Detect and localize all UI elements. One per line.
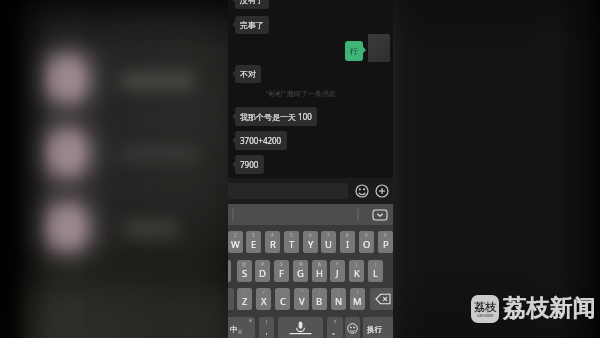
staticText: ;: [338, 289, 340, 295]
staticText: 9: [365, 232, 368, 238]
staticText: ?: [334, 319, 337, 326]
button[interactable]: 5: [284, 231, 299, 253]
button[interactable]: Backspace: [370, 288, 393, 310]
staticText: @: [242, 261, 247, 267]
button[interactable]: Comma: [259, 317, 274, 338]
staticText: ，: [263, 327, 270, 336]
staticText: LIZHI NEWS: [477, 314, 494, 318]
staticText: #: [261, 261, 264, 267]
button[interactable]: Hide keyboard: [373, 210, 387, 220]
staticText: 8: [346, 232, 349, 238]
staticText: %: [299, 261, 303, 267]
button[interactable]: &: [312, 260, 327, 282]
staticText: N: [335, 295, 343, 308]
staticText: K: [354, 267, 360, 280]
button[interactable]: #: [255, 260, 270, 282]
staticText: P: [383, 238, 389, 251]
staticText: 英: [238, 329, 243, 334]
staticText: O: [363, 238, 371, 251]
staticText: 中: [230, 325, 238, 334]
button[interactable]: 9: [359, 231, 374, 253]
staticText: “彬彬” 撤回了一条消息: [266, 89, 336, 99]
button[interactable]: 7: [321, 231, 336, 253]
staticText: L: [373, 267, 378, 280]
button[interactable]: 6: [303, 231, 318, 253]
button[interactable]: 2: [228, 231, 243, 253]
staticText: *: [336, 261, 339, 267]
staticText: J: [336, 267, 339, 280]
staticText: D: [259, 267, 266, 280]
staticText: -: [282, 289, 284, 295]
staticText: 不对: [240, 69, 256, 79]
staticText: 7: [327, 232, 330, 238]
button[interactable]: 完事了: [235, 16, 269, 34]
staticText: ): [375, 261, 377, 267]
staticText: /: [263, 289, 265, 295]
staticText: R: [270, 238, 276, 251]
button[interactable]: *: [330, 260, 345, 282]
staticText: $: [280, 261, 283, 267]
button[interactable]: 荔枝: [471, 294, 595, 323]
staticText: 0: [384, 232, 387, 238]
staticText: H: [316, 267, 323, 280]
staticText: !: [357, 289, 359, 295]
staticText: C: [280, 295, 286, 308]
button[interactable]: ): [368, 260, 383, 282]
button[interactable]: 0: [378, 231, 393, 253]
staticText: E: [251, 238, 257, 251]
staticText: 2: [234, 232, 237, 238]
button[interactable]: [228, 260, 231, 282]
staticText: 我那个号是一天 100: [240, 111, 312, 122]
staticText: Y: [308, 238, 314, 251]
staticText: :: [319, 289, 321, 295]
button[interactable]: 3700+4200: [235, 131, 287, 150]
button[interactable]: Avatar: [368, 34, 390, 62]
button[interactable]: @: [237, 260, 252, 282]
staticText: 荔枝新闻: [503, 294, 595, 323]
staticText: ": [301, 289, 303, 295]
button[interactable]: $: [274, 260, 289, 282]
button[interactable]: (: [349, 260, 364, 282]
button[interactable]: Period: [327, 317, 343, 338]
button[interactable]: 换行: [363, 317, 393, 338]
staticText: 5: [290, 232, 293, 238]
staticText: 行: [350, 46, 358, 56]
button[interactable]: Space: [278, 317, 323, 338]
button[interactable]: 我那个号是一天 100: [235, 107, 317, 126]
button[interactable]: More options: [375, 184, 389, 198]
button[interactable]: -: [275, 288, 290, 310]
staticText: (: [356, 261, 358, 267]
button[interactable]: :: [312, 288, 327, 310]
button[interactable]: 3: [246, 231, 261, 253]
button[interactable]: ': [237, 288, 252, 310]
staticText: I: [346, 238, 350, 251]
button[interactable]: ;: [331, 288, 346, 310]
staticText: 3700+4200: [240, 135, 282, 146]
staticText: 荔枝: [474, 300, 496, 314]
staticText: V: [299, 295, 305, 308]
staticText: 没有了: [240, 0, 264, 5]
button[interactable]: 8: [340, 231, 355, 253]
staticText: 4: [271, 232, 274, 238]
button[interactable]: Emoji: [355, 184, 369, 198]
button[interactable]: 7900: [235, 155, 264, 174]
button[interactable]: Emoji keyboard: [345, 317, 360, 338]
staticText: &: [318, 261, 322, 267]
button[interactable]: 不对: [235, 65, 261, 83]
staticText: M: [353, 295, 362, 308]
button[interactable]: 没有了: [235, 0, 269, 9]
button[interactable]: /: [256, 288, 271, 310]
staticText: 换行: [367, 325, 382, 334]
staticText: B: [316, 295, 323, 308]
button[interactable]: 行: [345, 41, 363, 61]
staticText: ': [244, 289, 246, 295]
staticText: 完事了: [240, 20, 264, 30]
staticText: X: [261, 295, 267, 308]
button[interactable]: %: [293, 260, 308, 282]
button[interactable]: !: [350, 288, 365, 310]
button[interactable]: 4: [265, 231, 280, 253]
button[interactable]: ": [294, 288, 309, 310]
button[interactable]: Switch input language: [228, 317, 255, 338]
